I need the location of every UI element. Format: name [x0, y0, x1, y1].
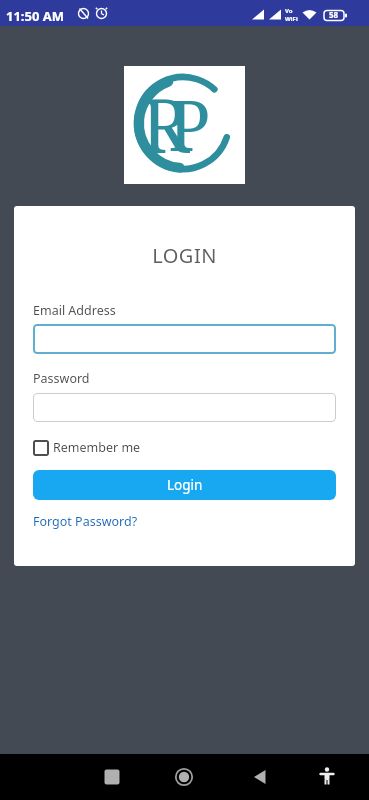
staticText: P	[168, 76, 211, 171]
button[interactable]: Login	[33, 470, 336, 500]
button[interactable]: Forgot Password?	[33, 513, 138, 530]
button[interactable]	[307, 757, 347, 797]
button[interactable]	[33, 324, 336, 354]
staticText: Vo	[285, 7, 293, 15]
button[interactable]	[33, 393, 336, 422]
button[interactable]	[164, 757, 204, 797]
staticText: WiFi	[285, 15, 298, 23]
staticText: Password	[33, 370, 90, 387]
staticText: LOGIN	[33, 242, 336, 269]
staticText: R	[141, 74, 190, 175]
button[interactable]	[92, 757, 132, 797]
staticText: Email Address	[33, 302, 116, 319]
button[interactable]	[240, 757, 280, 797]
staticText: 58	[329, 9, 339, 20]
staticText: Remember me	[53, 439, 141, 456]
staticText: Login	[167, 476, 203, 494]
staticText: 11:50 AM	[6, 7, 65, 25]
button[interactable]: Remember me	[33, 439, 141, 456]
